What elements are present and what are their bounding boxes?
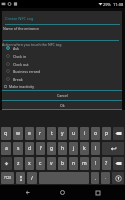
staticText: r [39,130,42,137]
staticText: Create NFC tag [5,16,34,21]
staticText: ?123 [4,176,11,180]
staticText: v [50,160,53,167]
staticText: x [28,160,31,167]
button[interactable]: s [13,142,23,155]
button[interactable]: ?123 [1,172,14,184]
button[interactable]: Business errand [2,67,122,75]
staticText: Action when you touch the NFC tag [2,42,62,47]
staticText: b [61,160,65,167]
staticText: t [51,130,53,137]
button[interactable]: f [36,142,45,155]
button[interactable]: k [80,142,89,155]
button[interactable]: Ask [2,44,122,52]
staticText: Ok [60,103,65,108]
button[interactable]: n [69,157,78,170]
staticText: . [105,176,106,180]
button[interactable]: t [47,127,56,140]
button[interactable] [113,127,124,140]
staticText: , [95,176,96,180]
staticText: g [50,145,54,152]
staticText: Ask [13,46,19,51]
staticText: s [17,145,20,152]
button[interactable] [112,172,124,184]
staticText: / [31,175,33,182]
button[interactable]: u [69,127,78,140]
staticText: m [82,160,87,167]
button[interactable]: b [58,157,67,170]
staticText: 29% [103,2,111,7]
button[interactable]: q [1,127,11,140]
button[interactable]: x [25,157,34,170]
button[interactable]: , [91,172,99,184]
staticText: 11:08 [113,2,124,7]
staticText: ? [105,160,108,167]
button[interactable]: ? [102,157,111,170]
staticText: j [73,145,75,152]
staticText: w [16,130,20,137]
staticText: k [83,145,86,152]
staticText: n [72,160,76,167]
button[interactable]: p [102,127,111,140]
staticText: Break [13,77,23,82]
staticText: Cancel [57,93,68,98]
staticText: ! [95,160,97,167]
button[interactable]: Clock out [2,60,122,68]
button[interactable] [1,157,12,170]
staticText: o [94,130,98,137]
button[interactable]: Recent apps [90,185,105,200]
staticText: l [95,145,97,152]
button[interactable]: z [14,157,23,170]
button[interactable] [16,172,25,184]
staticText: Name of the entrance [3,26,39,31]
staticText: y [61,130,64,137]
button[interactable]: o [91,127,100,140]
button[interactable]: a [1,142,11,155]
button[interactable]: d [25,142,34,155]
staticText: Clock in [13,54,27,59]
button[interactable] [102,142,124,155]
button[interactable]: e [25,127,34,140]
button[interactable]: / [27,172,37,184]
staticText: z [17,160,20,167]
staticText: u [72,130,76,137]
button[interactable]: g [47,142,56,155]
staticText: c [39,160,42,167]
staticText: Business errand [13,69,41,74]
button[interactable]: v [47,157,56,170]
staticText: Clock out [13,62,29,67]
button[interactable]: y [58,127,67,140]
button[interactable]: j [69,142,78,155]
button[interactable]: Home [55,185,70,200]
button[interactable]: Make inactivity [2,83,122,89]
staticText: e [28,130,31,137]
button[interactable]: Cancel [2,91,122,100]
button[interactable]: ! [91,157,100,170]
staticText: h [61,145,65,152]
staticText: f [40,145,42,152]
button[interactable]: m [80,157,89,170]
button[interactable]: h [58,142,67,155]
staticText: Make inactivity [9,84,35,89]
button[interactable]: w [13,127,23,140]
staticText: d [28,145,32,152]
button[interactable]: . [101,172,110,184]
button[interactable] [113,157,124,170]
staticText: a [5,145,8,152]
button[interactable]: Break [2,75,122,83]
button[interactable]: i [80,127,89,140]
button[interactable]: c [36,157,45,170]
staticText: p [105,130,109,137]
button[interactable]: Back [20,185,35,200]
staticText: i [84,130,86,137]
button[interactable]: r [36,127,45,140]
button[interactable]: l [91,142,100,155]
button[interactable]: Clock in [2,52,122,60]
button[interactable]: Ok [2,101,122,109]
staticText: q [4,130,8,137]
